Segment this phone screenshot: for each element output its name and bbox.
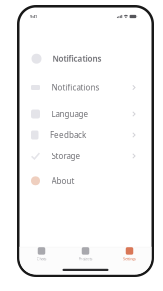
- staticText: 9:41: [30, 14, 37, 19]
- button[interactable]: Storage: [19, 145, 151, 166]
- staticText: Projects: [78, 256, 92, 261]
- staticText: Chats: [36, 256, 46, 261]
- button[interactable]: Settings: [107, 247, 151, 267]
- staticText: Feedback: [50, 130, 86, 140]
- button[interactable]: Notifications: [19, 77, 151, 98]
- staticText: Settings: [123, 256, 136, 261]
- button[interactable]: Feedback: [19, 124, 151, 145]
- button[interactable]: Chats: [19, 247, 63, 267]
- button[interactable]: Notifications: [19, 47, 151, 71]
- staticText: About: [51, 175, 74, 186]
- staticText: Language: [51, 109, 88, 119]
- staticText: Notifications: [52, 53, 101, 64]
- button[interactable]: About: [19, 170, 151, 191]
- staticText: Storage: [51, 151, 80, 161]
- button[interactable]: Projects: [63, 247, 107, 267]
- staticText: Notifications: [51, 82, 99, 93]
- button[interactable]: Language: [19, 103, 151, 124]
